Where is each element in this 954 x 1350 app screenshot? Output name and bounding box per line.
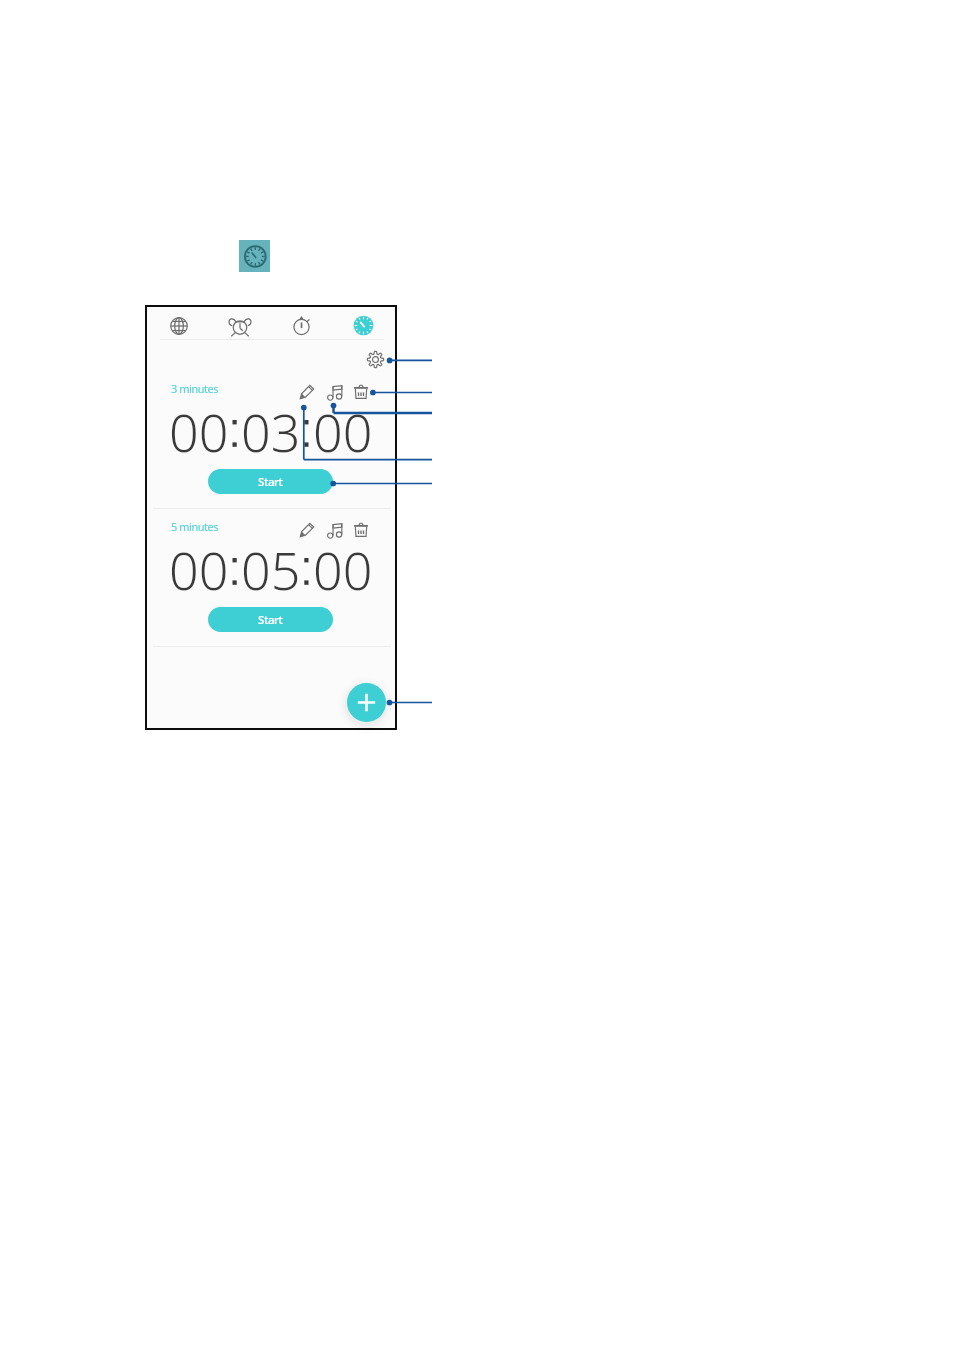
staticText: 5 minutes [171,519,219,534]
staticText: 00 [313,534,373,605]
staticText: 00 [169,534,229,605]
button[interactable]: Clock app icon [239,240,270,272]
button[interactable]: Alarm [209,308,270,343]
button[interactable]: Delete [353,384,369,400]
staticText: 00 [313,396,373,467]
button[interactable]: Timer [332,308,394,343]
staticText: 03 [241,396,301,467]
staticText: 05 [241,534,301,605]
staticText: 00 [169,396,229,467]
staticText: Start [258,474,283,490]
button[interactable]: Start [208,607,333,632]
button[interactable]: Delete [353,522,369,538]
staticText: Start [258,612,283,628]
button[interactable]: Ringtone [326,384,342,400]
button[interactable]: World clock [148,308,209,343]
button[interactable]: Settings [367,351,384,368]
staticText: 3 minutes [171,381,219,396]
button[interactable]: Add timer [347,683,386,722]
button[interactable]: Edit [299,384,315,400]
button[interactable]: Edit [299,522,315,538]
button[interactable]: Ringtone [326,522,342,538]
button[interactable]: Start [208,469,333,494]
button[interactable]: Stopwatch [270,308,332,343]
